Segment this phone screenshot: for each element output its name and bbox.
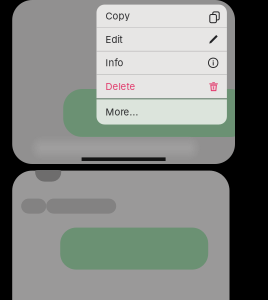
button[interactable]: Edit — [96, 28, 227, 51]
staticText: Copy — [105, 10, 129, 22]
button[interactable]: More... — [96, 99, 227, 124]
staticText: Edit — [105, 34, 122, 45]
staticText: Delete — [105, 81, 135, 92]
staticText: More... — [105, 106, 138, 118]
staticText: Info — [105, 57, 123, 69]
button[interactable]: Copy — [96, 5, 227, 28]
button[interactable]: Info — [96, 51, 227, 75]
button[interactable]: Delete — [96, 75, 227, 98]
